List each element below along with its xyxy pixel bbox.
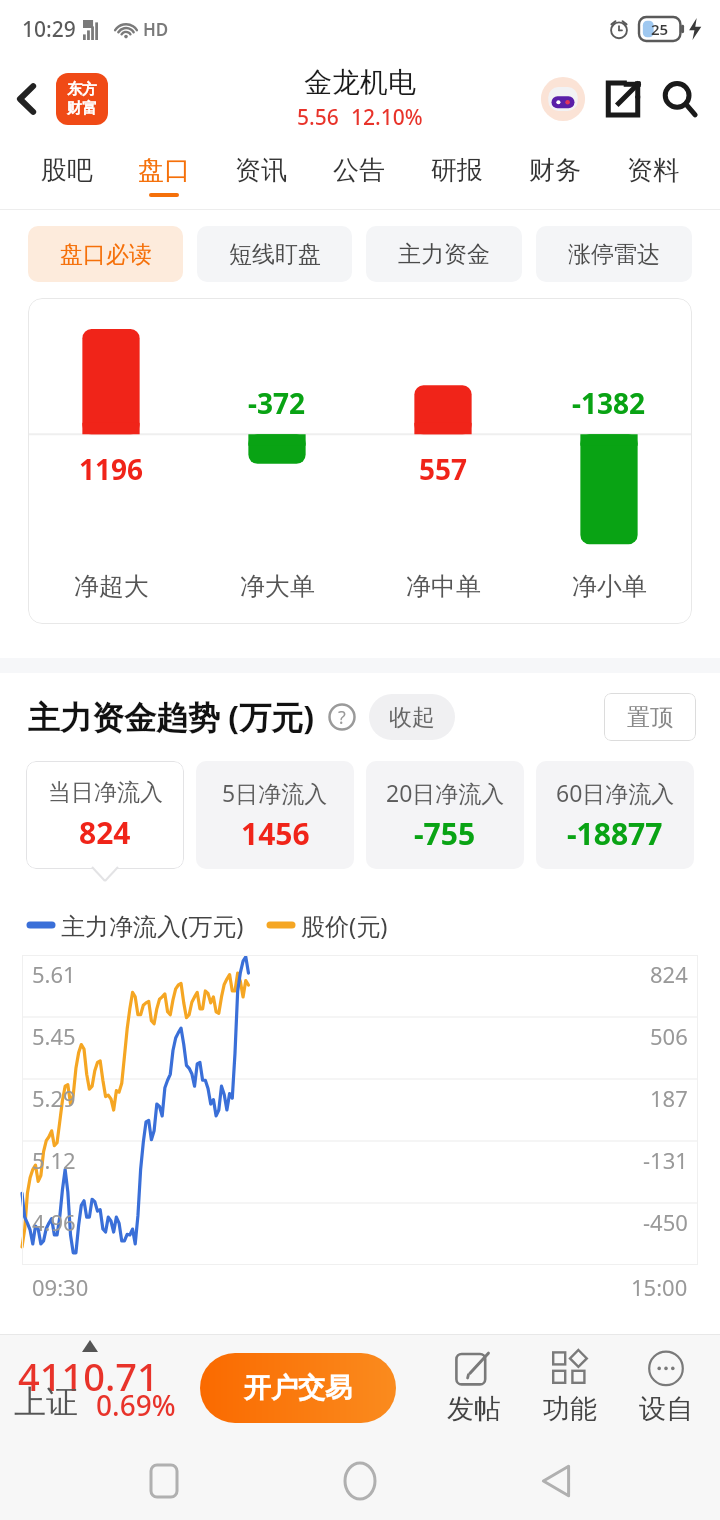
staticText: -131 <box>643 1145 688 1175</box>
button[interactable]: 5日净流入 <box>196 761 354 869</box>
button[interactable]: Share <box>598 74 648 124</box>
button[interactable]: Search <box>654 73 706 125</box>
button[interactable]: Back <box>0 72 54 126</box>
staticText: 187 <box>650 1083 688 1113</box>
staticText: 20日净流入 <box>386 777 505 808</box>
button[interactable]: 4110.71 <box>0 1334 200 1442</box>
button[interactable]: 60日净流入 <box>536 761 694 869</box>
staticText: 主力净流入(万元) <box>61 909 244 942</box>
staticText: 开户交易 <box>244 1371 352 1405</box>
staticText: 净小单 <box>572 571 647 602</box>
staticText: 东方 <box>67 80 97 99</box>
staticText: 60日净流入 <box>556 777 675 808</box>
staticText: -450 <box>643 1207 688 1237</box>
staticText: 盘口必读 <box>60 240 152 269</box>
staticText: 股价(元) <box>301 909 388 942</box>
button[interactable]: 收起 <box>369 694 455 740</box>
staticText: 5.61 <box>32 959 76 989</box>
staticText: HD <box>143 18 169 41</box>
button[interactable]: 开户交易 <box>200 1353 396 1423</box>
button[interactable]: 股吧 <box>18 140 115 210</box>
staticText: 10:29 <box>22 15 76 44</box>
staticText: 4.96 <box>32 1207 76 1237</box>
button[interactable]: 财务 <box>506 140 604 210</box>
button[interactable]: Back <box>524 1449 588 1513</box>
staticText: 设自 <box>639 1392 693 1426</box>
staticText: 研报 <box>431 154 483 187</box>
staticText: 净超大 <box>74 571 149 602</box>
staticText: 25 <box>651 19 669 39</box>
button[interactable]: 盘口必读 <box>28 226 183 282</box>
staticText: ? <box>338 705 346 730</box>
staticText: 5.45 <box>32 1021 76 1051</box>
button[interactable]: 资讯 <box>212 140 310 210</box>
staticText: -755 <box>414 813 476 854</box>
staticText: 公告 <box>333 154 385 187</box>
staticText: 财务 <box>529 154 581 187</box>
button[interactable]: East Money logo <box>56 73 108 125</box>
staticText: 0.69% <box>96 1386 176 1424</box>
button[interactable]: 研报 <box>408 140 506 210</box>
button[interactable]: Functions <box>522 1334 618 1442</box>
button[interactable]: Home <box>328 1449 392 1513</box>
button[interactable]: 短线盯盘 <box>197 226 352 282</box>
staticText: 功能 <box>543 1392 597 1426</box>
staticText: 当日净流入 <box>48 778 163 807</box>
staticText: 主力资金 <box>398 240 490 269</box>
staticText: 涨停雷达 <box>568 240 660 269</box>
staticText: 盘口 <box>138 154 190 187</box>
staticText: 824 <box>650 959 688 989</box>
staticText: 5.29 <box>32 1083 76 1113</box>
staticText: 824 <box>79 812 131 853</box>
staticText: 收起 <box>389 703 435 732</box>
button[interactable]: Recents <box>132 1449 196 1513</box>
button[interactable]: 公告 <box>310 140 408 210</box>
button[interactable]: AI assistant <box>538 74 588 124</box>
button[interactable]: Help <box>327 702 357 732</box>
staticText: 5.56 <box>297 103 339 132</box>
staticText: 财富 <box>67 99 97 118</box>
staticText: -1382 <box>572 384 646 422</box>
staticText: 主力资金趋势 (万元) <box>28 695 315 739</box>
staticText: 资料 <box>627 154 679 187</box>
staticText: 股吧 <box>41 154 93 187</box>
staticText: 金龙机电 <box>304 65 416 100</box>
staticText: 净中单 <box>406 571 481 602</box>
staticText: 557 <box>419 450 468 488</box>
button[interactable]: 1196 <box>28 298 692 624</box>
staticText: 置顶 <box>627 703 673 732</box>
staticText: 09:30 <box>32 1272 89 1302</box>
button[interactable]: More <box>618 1334 714 1442</box>
staticText: 净大单 <box>240 571 315 602</box>
staticText: 短线盯盘 <box>229 240 321 269</box>
staticText: 1456 <box>241 813 310 854</box>
button[interactable]: 置顶 <box>604 693 696 741</box>
button[interactable]: 20日净流入 <box>366 761 524 869</box>
staticText: -372 <box>248 384 306 422</box>
button[interactable]: Post <box>426 1334 522 1442</box>
staticText: 506 <box>650 1021 688 1051</box>
button[interactable]: 当日净流入 <box>26 761 184 869</box>
staticText: 5.12 <box>32 1145 76 1175</box>
staticText: 4110.71 <box>18 1350 159 1402</box>
staticText: 发帖 <box>447 1392 501 1426</box>
staticText: 1196 <box>79 450 144 488</box>
button[interactable]: 主力资金 <box>366 226 522 282</box>
button[interactable]: 盘口 <box>115 140 212 210</box>
staticText: 资讯 <box>235 154 287 187</box>
button[interactable]: 资料 <box>604 140 702 210</box>
staticText: 12.10% <box>351 103 423 132</box>
staticText: -18877 <box>567 813 663 854</box>
staticText: 5日净流入 <box>222 777 328 808</box>
staticText: 15:00 <box>631 1272 688 1302</box>
button[interactable]: 涨停雷达 <box>536 226 692 282</box>
staticText: 上证 <box>14 1382 78 1422</box>
